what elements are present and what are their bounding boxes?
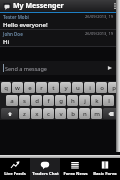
staticText: a <box>10 97 14 105</box>
staticText: k <box>95 97 99 105</box>
button[interactable]: Live Feeds <box>0 158 30 180</box>
staticText: p <box>112 84 116 92</box>
staticText: Forex News <box>63 171 88 177</box>
button[interactable]: App icon <box>2 2 11 11</box>
staticText: Tester Mobi <box>3 14 29 20</box>
button[interactable]: g <box>55 95 66 106</box>
staticText: m <box>94 110 100 118</box>
button[interactable]: v <box>55 108 66 119</box>
staticText: h <box>71 97 75 105</box>
button[interactable]: f <box>43 95 54 106</box>
staticText: e <box>28 84 32 92</box>
button[interactable]: j <box>79 95 90 106</box>
staticText: o <box>100 84 104 92</box>
staticText: b <box>71 110 75 118</box>
staticText: s <box>23 97 26 105</box>
staticText: Hello everyone! <box>3 21 48 28</box>
button[interactable]: Traders Chat <box>30 158 60 180</box>
staticText: t <box>52 84 55 92</box>
staticText: n <box>83 110 87 118</box>
staticText: v <box>59 110 63 118</box>
staticText: i <box>89 84 91 92</box>
button[interactable]: h <box>67 95 78 106</box>
button[interactable]: y <box>60 82 71 93</box>
button[interactable]: l <box>103 95 114 106</box>
button[interactable]: Basic Forex <box>90 158 120 180</box>
staticText: y <box>64 84 68 92</box>
button[interactable]: Delete <box>103 108 119 119</box>
staticText: Hi <box>3 38 10 45</box>
button[interactable]: u <box>72 82 83 93</box>
staticText: g <box>59 97 63 105</box>
button[interactable]: x <box>31 108 42 119</box>
staticText: x <box>35 110 39 118</box>
button[interactable]: m <box>91 108 102 119</box>
button[interactable]: Forex News <box>60 158 90 180</box>
button[interactable]: s <box>19 95 30 106</box>
staticText: j <box>84 97 86 105</box>
staticText: John Doe <box>3 31 23 37</box>
staticText: Traders Chat <box>32 171 59 177</box>
button[interactable]: i <box>84 82 95 93</box>
button[interactable]: q <box>1 82 11 93</box>
button[interactable]: a <box>6 95 18 106</box>
button[interactable]: w <box>12 82 23 93</box>
button[interactable]: k <box>91 95 102 106</box>
button[interactable]: o <box>96 82 107 93</box>
button[interactable]: Send a message <box>0 61 120 75</box>
button[interactable]: d <box>31 95 42 106</box>
button[interactable]: b <box>67 108 78 119</box>
staticText: Send a message <box>5 65 47 72</box>
button[interactable]: Send <box>106 64 114 72</box>
staticText: r <box>40 84 43 92</box>
staticText: My Messenger <box>13 1 64 11</box>
button[interactable]: Tester Mobi <box>0 13 120 29</box>
staticText: Basic Forex <box>93 171 117 177</box>
button[interactable]: r <box>36 82 47 93</box>
button[interactable]: More options <box>111 0 118 12</box>
button[interactable]: n <box>79 108 90 119</box>
staticText: l <box>108 97 110 105</box>
staticText: Live Feeds <box>4 171 26 177</box>
staticText: w <box>15 84 20 92</box>
staticText: d <box>35 97 39 105</box>
button[interactable]: Shift <box>1 108 18 119</box>
button[interactable]: John Doe <box>0 30 120 46</box>
button[interactable]: p <box>108 82 119 93</box>
button[interactable]: c <box>43 108 54 119</box>
staticText: u <box>76 84 80 92</box>
button[interactable]: t <box>48 82 59 93</box>
staticText: z <box>23 110 26 118</box>
staticText: q <box>4 84 8 92</box>
staticText: f <box>47 97 50 105</box>
staticText: 26/09/2013, 19 <box>85 14 113 19</box>
button[interactable]: e <box>24 82 35 93</box>
staticText: 26/09/2013, 19 <box>85 31 113 36</box>
staticText: c <box>47 110 50 118</box>
button[interactable]: z <box>19 108 30 119</box>
